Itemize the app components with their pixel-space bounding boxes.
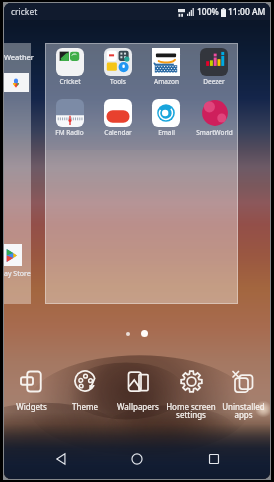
button[interactable]: Home screen settings [164,369,217,425]
staticText: Play Store [4,269,31,279]
staticText: cricket [11,6,38,18]
staticText: SmartWorld [196,128,233,137]
staticText: Weather [4,52,34,62]
button[interactable]: Deezer [190,43,238,94]
staticText: Tools [110,77,126,86]
button[interactable]: Back [41,444,81,474]
button[interactable]: FM Radio [45,94,94,145]
staticText: Calendar [104,128,132,137]
button[interactable]: Amazon [142,43,190,94]
button[interactable]: Tools [94,43,142,94]
staticText: Uninstalled apps [222,401,265,420]
staticText: Wallpapers [117,401,159,412]
staticText: Cricket [59,77,81,86]
staticText: Deezer [203,77,225,86]
button[interactable]: Widgets [4,369,58,425]
button[interactable]: Calendar [94,94,142,145]
staticText: Widgets [16,401,47,412]
button[interactable]: Uninstalled apps [217,369,270,425]
button[interactable]: Email [142,94,190,145]
staticText: Email [158,128,175,137]
staticText: Home screen settings [166,401,216,420]
staticText: Amazon [154,77,179,86]
button[interactable]: Theme [58,369,111,425]
staticText: Theme [72,401,98,412]
button[interactable]: Home [117,444,157,474]
button[interactable]: Cricket [45,43,94,94]
staticText: 100% [197,6,219,18]
button[interactable]: Recent apps [194,444,234,474]
staticText: 11:00 AM [228,6,266,18]
button[interactable]: Wallpapers [111,369,164,425]
staticText: FM Radio [55,128,84,137]
button[interactable]: SmartWorld [190,94,238,145]
